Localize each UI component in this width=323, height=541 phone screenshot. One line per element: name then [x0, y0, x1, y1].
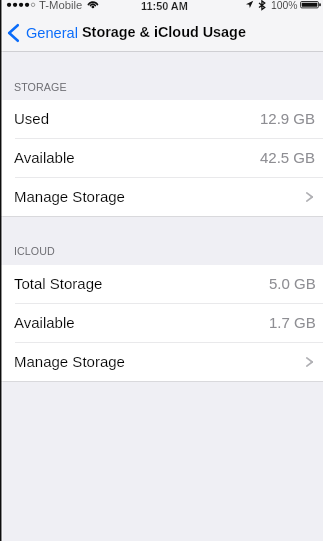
staticText: Used: [14, 110, 50, 127]
staticText: 12.9 GB: [260, 110, 316, 127]
button[interactable]: Total Storage: [0, 265, 323, 303]
button[interactable]: Available: [0, 139, 323, 177]
button[interactable]: Back to General: [0, 24, 78, 42]
staticText: T-Mobile: [39, 0, 83, 12]
button[interactable]: Manage Storage: [0, 178, 323, 216]
staticText: 42.5 GB: [260, 149, 316, 166]
staticText: 100%: [271, 0, 298, 12]
staticText: Manage Storage: [14, 188, 125, 205]
staticText: Available: [14, 314, 75, 331]
staticText: 1.7 GB: [269, 314, 316, 331]
button[interactable]: Used: [0, 100, 323, 138]
staticText: STORAGE: [14, 81, 67, 93]
staticText: ICLOUD: [14, 245, 55, 257]
staticText: Total Storage: [14, 275, 103, 292]
staticText: 11:50 AM: [141, 0, 188, 12]
staticText: Storage & iCloud Usage: [82, 24, 246, 40]
staticText: Manage Storage: [14, 353, 125, 370]
staticText: Available: [14, 149, 75, 166]
staticText: General: [26, 25, 78, 41]
button[interactable]: Available: [0, 304, 323, 342]
staticText: 5.0 GB: [269, 275, 316, 292]
button[interactable]: Manage Storage: [0, 343, 323, 381]
